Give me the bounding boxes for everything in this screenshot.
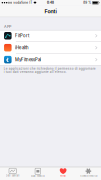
staticText: 0:48	[47, 1, 54, 4]
button[interactable]: Scheda medica	[76, 167, 101, 180]
staticText: APP	[4, 24, 11, 29]
button[interactable]: Dati medici	[25, 167, 50, 180]
staticText: Fonti	[60, 174, 66, 177]
staticText: FitPort	[15, 33, 29, 38]
button[interactable]: MyFitnessPal	[0, 54, 101, 65]
button[interactable]: Dati sanitari	[0, 167, 25, 180]
staticText: 89 %	[83, 1, 91, 4]
staticText: Scheda medica	[80, 174, 97, 177]
staticText: iHealth	[15, 45, 29, 50]
button[interactable]: iHealth	[0, 42, 101, 53]
staticText: Dati medici	[31, 175, 45, 177]
staticText: Dati sanitari	[6, 174, 20, 177]
staticText: vodafone IT	[13, 1, 32, 4]
button[interactable]: Fonti	[50, 167, 76, 180]
staticText: MyFitnessPal	[15, 57, 41, 62]
button[interactable]: FitPort	[0, 30, 101, 42]
staticText: Le applicazioni che richiedono il permes…	[4, 67, 96, 74]
staticText: Fonti	[44, 8, 56, 14]
